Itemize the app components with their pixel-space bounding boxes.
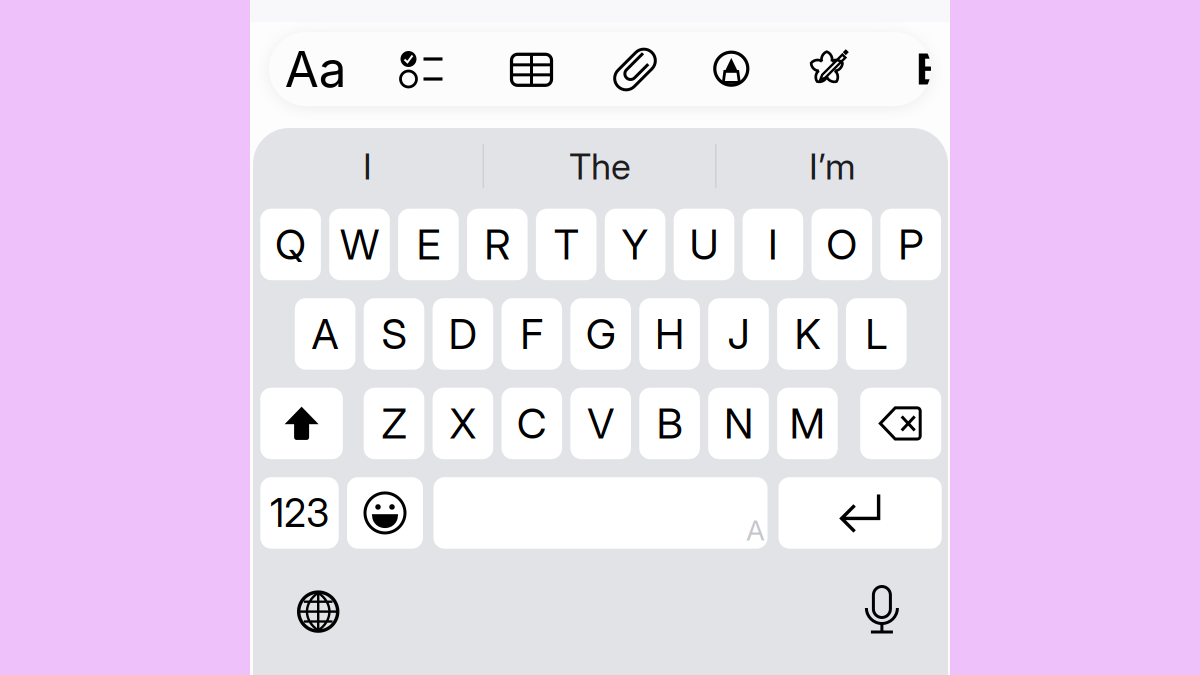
button[interactable]: K — [777, 298, 838, 370]
staticText: R — [484, 219, 510, 269]
staticText: C — [517, 398, 547, 448]
button[interactable]: Writing Tools — [805, 46, 849, 90]
staticText: O — [826, 219, 857, 269]
staticText: B — [916, 43, 944, 95]
staticText: Y — [622, 219, 649, 269]
staticText: G — [586, 309, 616, 359]
staticText: W — [340, 219, 379, 269]
button[interactable]: M — [777, 388, 838, 459]
button[interactable]: W — [329, 209, 390, 280]
button[interactable]: F — [501, 298, 562, 370]
button[interactable]: Attach file — [614, 48, 656, 90]
button[interactable]: G — [570, 298, 631, 370]
button[interactable]: C — [501, 388, 562, 459]
staticText: L — [865, 309, 887, 359]
button[interactable]: Next keyboard — [297, 591, 339, 633]
staticText: B — [657, 398, 683, 448]
staticText: H — [655, 309, 684, 359]
staticText: N — [724, 398, 753, 448]
staticText: 123 — [270, 490, 329, 536]
button[interactable]: Q — [260, 209, 321, 280]
button[interactable]: B — [913, 47, 947, 91]
button[interactable]: Shift — [260, 388, 343, 459]
staticText: U — [689, 219, 718, 269]
staticText: P — [898, 219, 923, 269]
button[interactable]: Markup — [711, 49, 751, 89]
button[interactable]: space — [433, 477, 767, 549]
staticText: E — [416, 219, 440, 269]
button[interactable]: Emoji — [347, 477, 423, 549]
button[interactable]: D — [433, 298, 493, 370]
button[interactable]: X — [433, 388, 493, 459]
staticText: I’m — [809, 145, 856, 188]
staticText: A — [746, 513, 765, 547]
button[interactable]: 123 — [260, 477, 339, 549]
button[interactable]: P — [880, 209, 941, 280]
button[interactable]: Dictate — [860, 585, 904, 633]
button[interactable]: H — [639, 298, 700, 370]
button[interactable]: Return — [778, 477, 942, 549]
staticText: Q — [275, 219, 306, 269]
staticText: M — [789, 398, 825, 448]
button[interactable]: Delete — [860, 388, 941, 459]
button[interactable]: B — [639, 388, 700, 459]
staticText: The — [569, 145, 631, 188]
staticText: K — [794, 309, 820, 359]
button[interactable]: N — [708, 388, 769, 459]
button[interactable]: T — [536, 209, 596, 280]
staticText: I — [363, 145, 372, 188]
button[interactable]: Table — [511, 54, 551, 85]
button[interactable]: L — [846, 298, 907, 370]
staticText: Z — [381, 398, 406, 448]
button[interactable]: Checklist — [400, 49, 444, 89]
staticText: X — [449, 398, 476, 448]
button[interactable]: A — [295, 298, 355, 370]
button[interactable]: V — [570, 388, 631, 459]
button[interactable]: Z — [364, 388, 424, 459]
staticText: D — [448, 309, 477, 359]
button[interactable]: Aa — [280, 40, 352, 98]
button[interactable]: O — [811, 209, 872, 280]
button[interactable]: I’m — [717, 136, 948, 196]
button[interactable]: I — [252, 136, 483, 196]
staticText: A — [312, 309, 339, 359]
button[interactable]: The — [484, 136, 715, 196]
staticText: V — [587, 398, 614, 448]
button[interactable]: R — [467, 209, 528, 280]
button[interactable]: Y — [605, 209, 665, 280]
button[interactable]: S — [364, 298, 424, 370]
button[interactable]: J — [708, 298, 769, 370]
button[interactable]: E — [398, 209, 459, 280]
staticText: F — [520, 309, 543, 359]
staticText: I — [768, 219, 778, 269]
button[interactable]: U — [674, 209, 734, 280]
staticText: T — [554, 219, 579, 269]
staticText: J — [727, 309, 749, 359]
staticText: S — [381, 309, 406, 359]
button[interactable]: I — [743, 209, 803, 280]
staticText: Aa — [285, 39, 347, 99]
